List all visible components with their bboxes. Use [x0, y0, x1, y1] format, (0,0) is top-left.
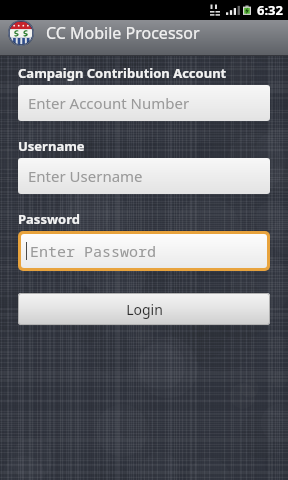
staticText: Enter Password [30, 241, 157, 261]
other: App icon [8, 20, 34, 46]
staticText: Username [18, 137, 85, 155]
staticText: Enter Account Number [28, 93, 190, 113]
button[interactable]: Enter Username [18, 158, 270, 194]
staticText: Password [18, 210, 80, 228]
staticText: Enter Username [28, 166, 143, 186]
staticText: Campaign Contribution Account [18, 64, 227, 82]
button[interactable]: Enter Password [21, 234, 267, 268]
staticText: Login [126, 300, 163, 319]
staticText: 6:32 [257, 1, 283, 19]
button[interactable]: Login [18, 293, 270, 325]
button[interactable]: Enter Account Number [18, 85, 270, 121]
staticText: CC Mobile Processor [46, 22, 200, 44]
